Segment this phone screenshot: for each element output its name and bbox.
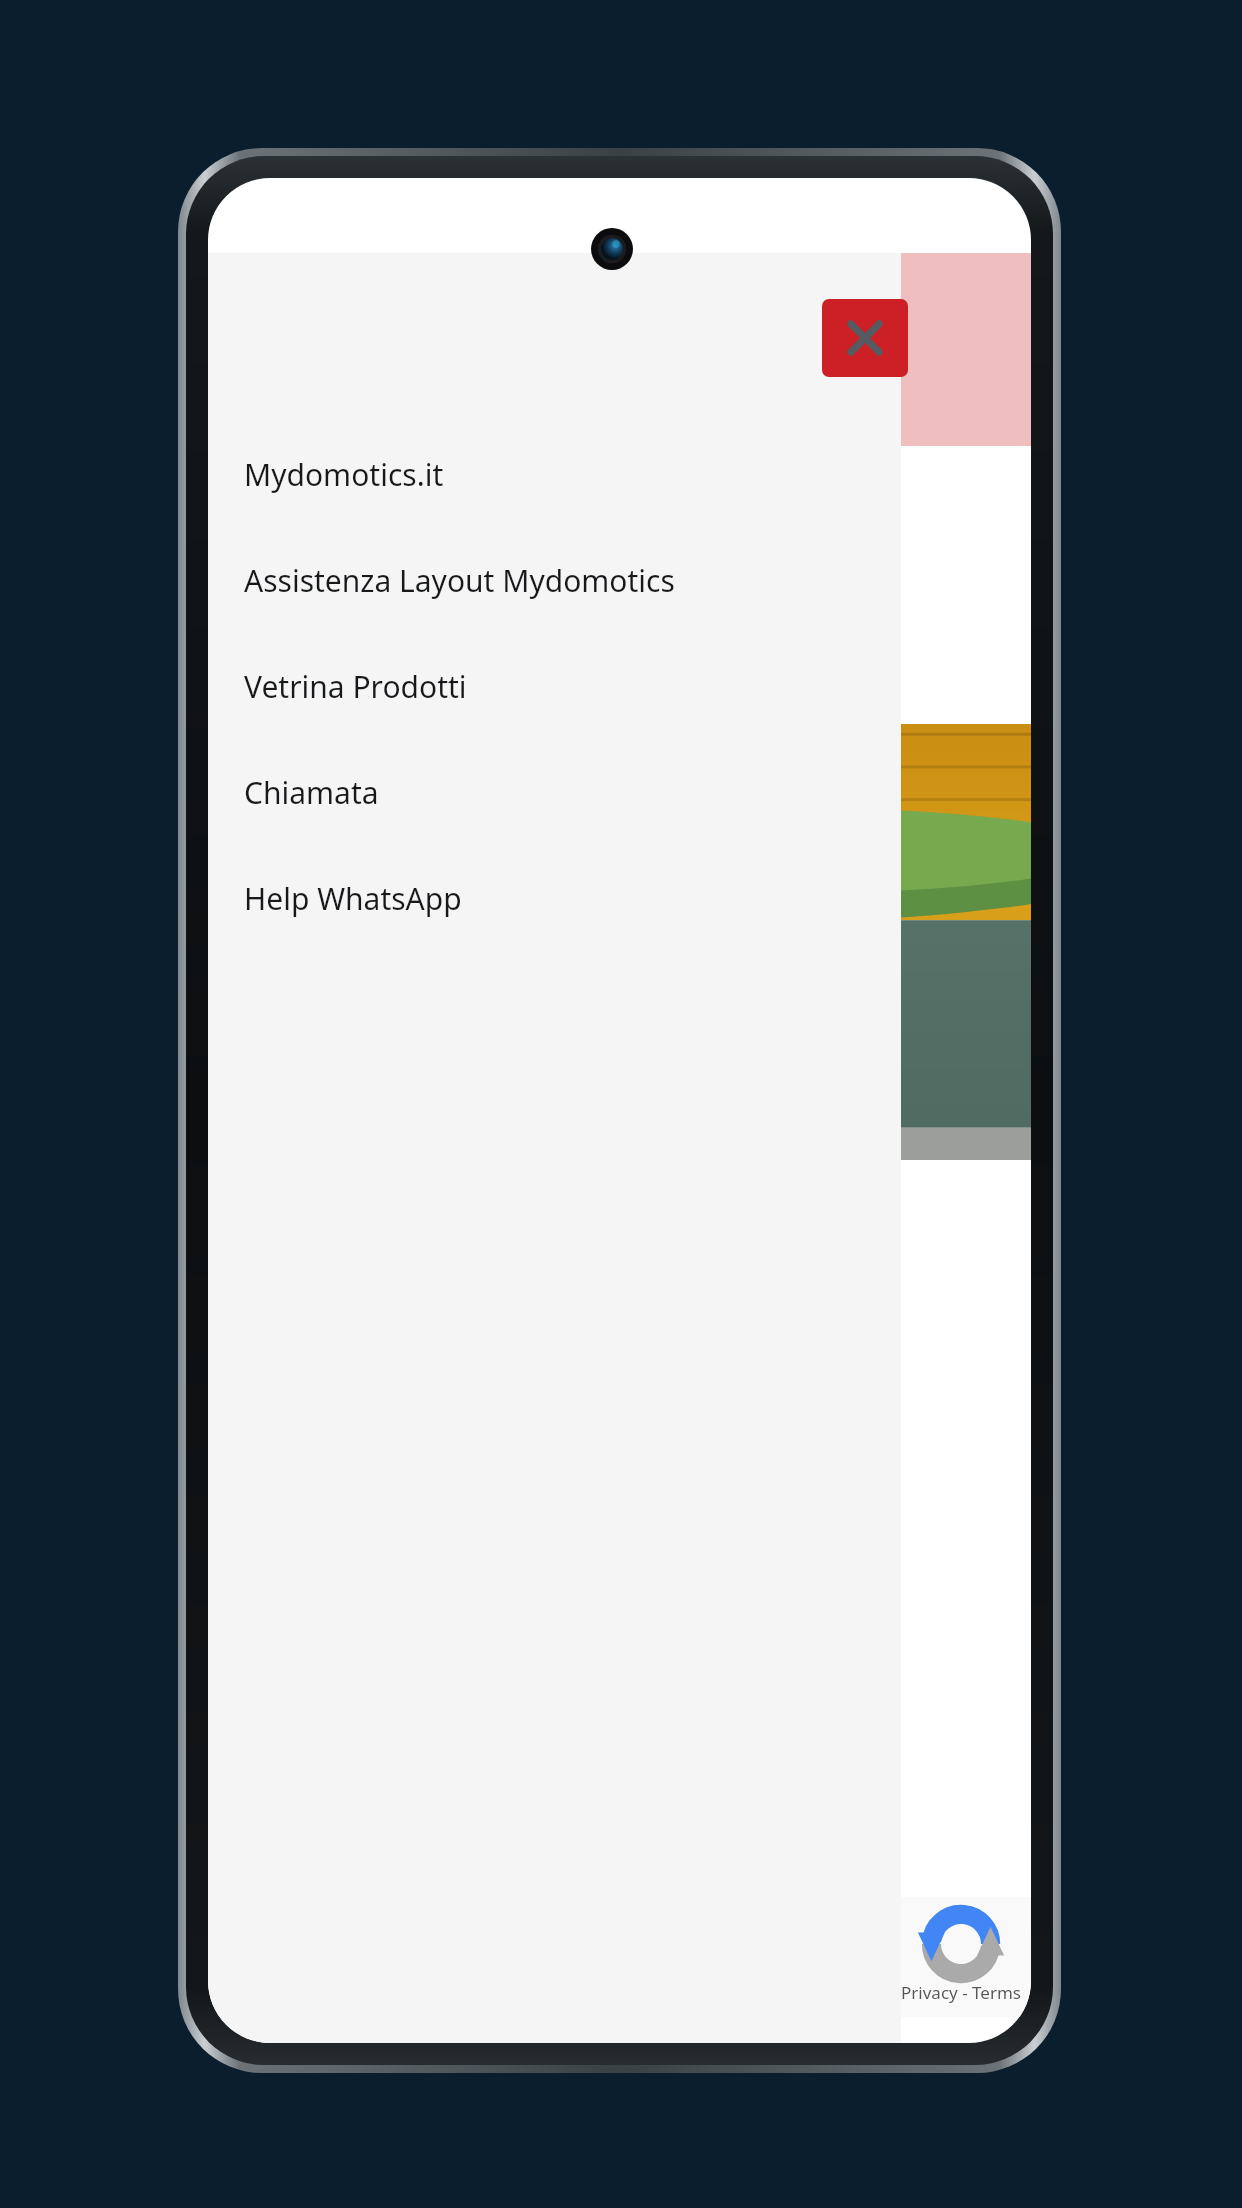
staticText: Help WhatsApp	[244, 878, 462, 919]
staticText: Mydomotics.it	[244, 454, 444, 495]
staticText: Assistenza Layout Mydomotics	[244, 560, 675, 601]
staticText: Privacy - Terms	[891, 1981, 1031, 2004]
button[interactable]: Chiamata	[208, 739, 901, 845]
button[interactable]: reCAPTCHA privacy and terms	[891, 1897, 1031, 2017]
button[interactable]: Close menu	[822, 299, 908, 377]
button[interactable]: Assistenza Layout Mydomotics	[208, 527, 901, 633]
button[interactable]: Mydomotics.it	[208, 421, 901, 527]
staticText: Chiamata	[244, 772, 379, 813]
button[interactable]: Help WhatsApp	[208, 845, 901, 951]
button[interactable]: Vetrina Prodotti	[208, 633, 901, 739]
staticText: Vetrina Prodotti	[244, 666, 467, 707]
